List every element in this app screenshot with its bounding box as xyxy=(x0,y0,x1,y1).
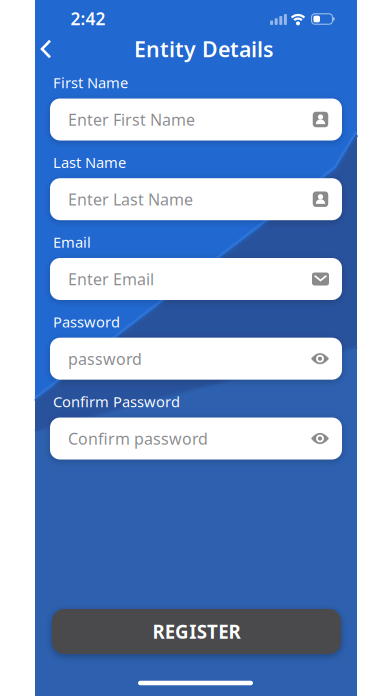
button[interactable]: Enter Email xyxy=(50,258,342,300)
staticText: Enter First Name xyxy=(68,109,195,130)
staticText: Entity Details xyxy=(134,35,274,63)
staticText: Enter Last Name xyxy=(68,189,193,210)
button[interactable]: REGISTER xyxy=(52,609,341,654)
button[interactable]: Back xyxy=(34,37,58,61)
staticText: Last Name xyxy=(53,152,126,172)
button[interactable]: password xyxy=(50,338,342,380)
staticText: REGISTER xyxy=(152,619,241,644)
staticText: Confirm Password xyxy=(53,392,180,411)
button[interactable]: Confirm password xyxy=(50,417,342,459)
staticText: First Name xyxy=(53,73,128,92)
staticText: 2:42 xyxy=(70,7,105,30)
staticText: Password xyxy=(53,312,120,331)
button[interactable]: Enter Last Name xyxy=(50,178,342,220)
staticText: Confirm password xyxy=(68,428,208,449)
staticText: password xyxy=(68,348,142,369)
staticText: Enter Email xyxy=(68,268,154,290)
button[interactable]: Enter First Name xyxy=(50,98,342,140)
staticText: Email xyxy=(53,232,91,252)
